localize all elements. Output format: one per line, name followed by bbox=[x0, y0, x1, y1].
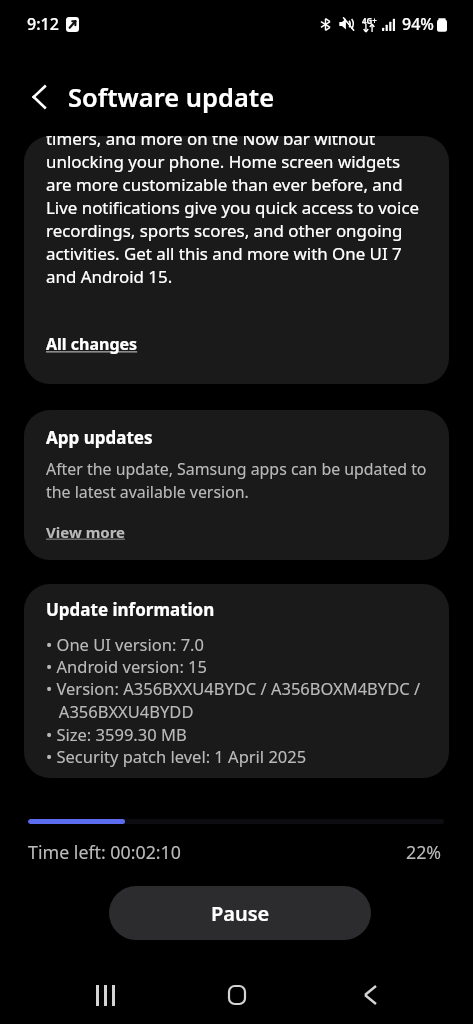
staticText: After the update, Samsung apps can be up… bbox=[46, 458, 427, 503]
button[interactable]: App updates bbox=[24, 410, 449, 560]
staticText: 94% bbox=[402, 13, 434, 35]
staticText: • Android version: 15 bbox=[46, 655, 207, 677]
staticText: 9:12 bbox=[27, 13, 59, 35]
staticText: Software update bbox=[68, 80, 275, 115]
staticText: • Version: A356BXXU4BYDC / A356BOXM4BYDC… bbox=[46, 677, 421, 723]
staticText: All changes bbox=[46, 333, 138, 355]
button[interactable]: Recent apps bbox=[73, 967, 137, 1023]
staticText: Pause bbox=[211, 900, 270, 927]
staticText: View more bbox=[46, 522, 125, 542]
staticText: • One UI version: 7.0 bbox=[46, 633, 204, 655]
button[interactable]: timers, and more on the Now bar without … bbox=[24, 136, 449, 384]
button[interactable]: Back bbox=[338, 967, 402, 1023]
staticText: timers, and more on the Now bar without … bbox=[46, 136, 420, 288]
button[interactable]: Home bbox=[205, 967, 269, 1023]
staticText: App updates bbox=[46, 426, 153, 449]
staticText: 4G+ bbox=[362, 15, 377, 26]
staticText: • Size: 3599.30 MB bbox=[46, 723, 187, 745]
staticText: Update information bbox=[46, 598, 215, 621]
button[interactable]: Navigate up bbox=[20, 78, 58, 116]
button[interactable]: Pause bbox=[109, 886, 371, 940]
staticText: Time left: 00:02:10 bbox=[28, 840, 181, 864]
staticText: 22% bbox=[406, 840, 442, 864]
staticText: • Security patch level: 1 April 2025 bbox=[46, 745, 307, 767]
